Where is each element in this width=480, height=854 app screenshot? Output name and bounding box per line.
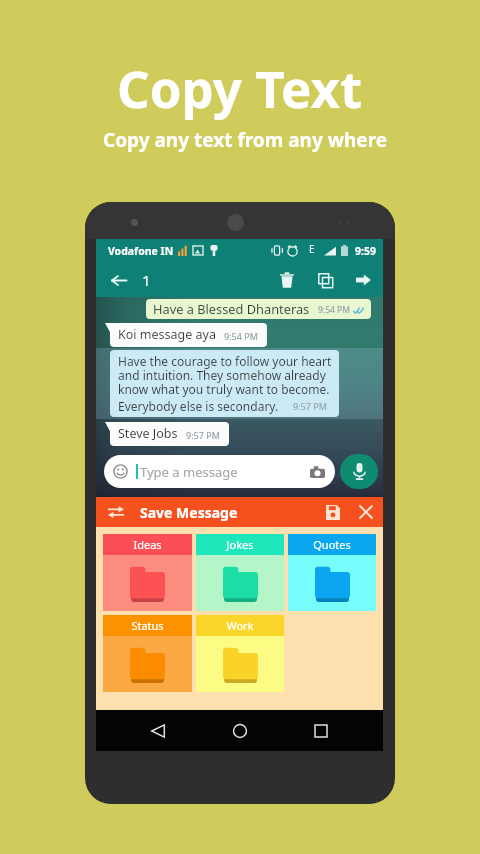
button[interactable]: Delete [275,268,299,292]
button[interactable]: Close [355,501,377,523]
staticText: 9:54 PM [224,330,258,342]
button[interactable]: Status [103,615,192,692]
staticText: E [309,242,315,256]
button[interactable]: Work [196,615,284,692]
button[interactable]: Type a message [104,455,335,488]
button[interactable]: Quotes [288,534,376,611]
button[interactable]: Home [220,711,260,751]
staticText: Quotes [313,537,351,552]
button[interactable]: Jokes [196,534,284,611]
staticText: 9:54 PM [318,304,350,316]
staticText: Have the courage to follow your heart an… [118,353,332,398]
staticText: Copy any text from any where [103,127,388,153]
staticText: 9:57 PM [186,429,220,441]
staticText: 9:57 PM [293,400,327,412]
button[interactable]: Save [322,501,344,523]
button[interactable]: Record voice message [340,454,378,489]
staticText: Steve Jobs [118,425,178,442]
button[interactable]: Ideas [103,534,192,611]
staticText: Everybody else is secondary. [118,398,279,414]
staticText: 1 [142,270,151,290]
staticText: Copy Text [117,53,363,122]
staticText: Work [226,618,254,633]
button[interactable]: Back [138,711,178,751]
staticText: 9:59 [355,244,376,258]
staticText: Type a message [140,463,238,481]
button[interactable]: Back [107,268,131,292]
staticText: Save Message [140,503,238,522]
staticText: Vodafone IN [108,244,174,258]
button[interactable]: Recents [301,711,341,751]
staticText: Have a Blessed Dhanteras [153,300,310,317]
staticText: Ideas [133,537,162,552]
staticText: Status [131,618,164,633]
button[interactable]: Swap [106,502,126,522]
staticText: Koi message aya [118,326,216,343]
staticText: Jokes [226,537,254,552]
button[interactable]: Forward [351,268,375,292]
button[interactable]: Copy [313,268,337,292]
